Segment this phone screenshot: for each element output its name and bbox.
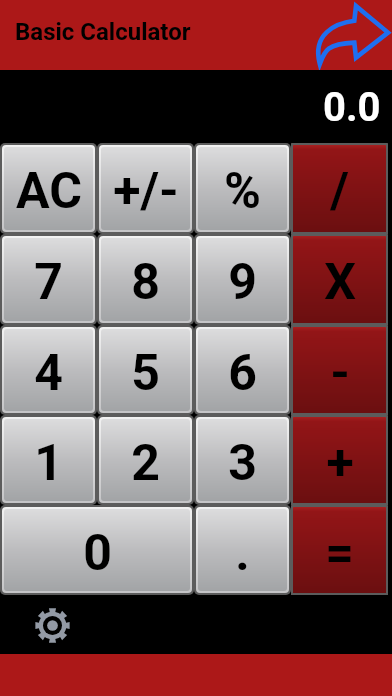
button[interactable]: +: [293, 417, 386, 503]
staticText: .: [235, 524, 250, 583]
button[interactable]: 6: [198, 329, 287, 411]
staticText: Basic Calculator: [15, 18, 191, 46]
staticText: 9: [228, 253, 257, 312]
staticText: 2: [131, 434, 160, 493]
staticText: /: [330, 162, 349, 221]
button[interactable]: 8: [101, 238, 190, 321]
button[interactable]: +/-: [101, 147, 190, 230]
staticText: AC: [16, 162, 82, 221]
staticText: 5: [131, 344, 160, 403]
staticText: 4: [34, 344, 63, 403]
button[interactable]: %: [198, 147, 287, 230]
button[interactable]: 1: [4, 419, 93, 501]
staticText: +: [326, 434, 354, 493]
staticText: X: [324, 253, 356, 312]
button[interactable]: =: [293, 507, 386, 593]
staticText: -: [330, 344, 350, 403]
button[interactable]: Share: [312, 0, 392, 70]
button[interactable]: 3: [198, 419, 287, 501]
staticText: +/-: [113, 162, 179, 221]
staticText: 3: [228, 434, 257, 493]
staticText: =: [325, 524, 354, 583]
button[interactable]: .: [198, 509, 287, 591]
staticText: 0: [83, 524, 112, 583]
button[interactable]: 0: [4, 509, 190, 591]
button[interactable]: AC: [4, 147, 93, 230]
button[interactable]: 7: [4, 238, 93, 321]
staticText: 7: [34, 253, 63, 312]
button[interactable]: Settings: [24, 597, 80, 653]
staticText: 0.0: [323, 84, 381, 131]
button[interactable]: -: [293, 327, 386, 413]
button[interactable]: X: [293, 236, 386, 323]
staticText: %: [224, 162, 261, 221]
button[interactable]: 9: [198, 238, 287, 321]
button[interactable]: 5: [101, 329, 190, 411]
button[interactable]: /: [293, 145, 386, 232]
staticText: 6: [228, 344, 257, 403]
staticText: 8: [131, 253, 160, 312]
staticText: 1: [34, 434, 63, 493]
button[interactable]: 4: [4, 329, 93, 411]
button[interactable]: 2: [101, 419, 190, 501]
